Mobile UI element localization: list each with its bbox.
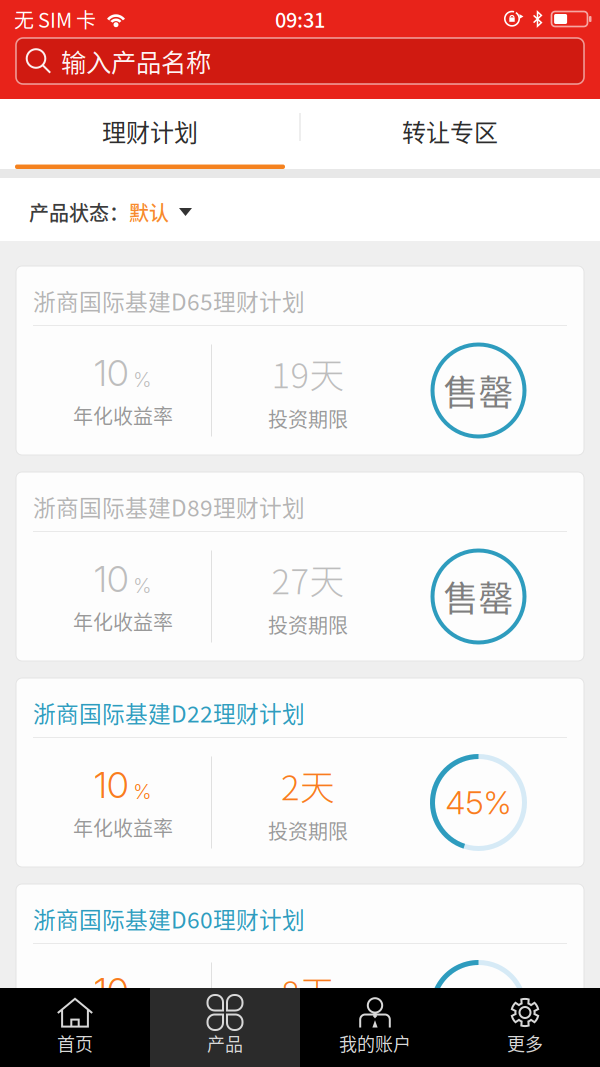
staticText: 10	[94, 969, 129, 1013]
staticText: 27天	[271, 554, 344, 604]
staticText: 10	[94, 351, 129, 395]
staticText: 19天	[271, 348, 344, 398]
staticText: 售罄	[443, 365, 513, 416]
staticText: 首页	[57, 1030, 93, 1056]
button[interactable]: 产品	[150, 988, 300, 1067]
button[interactable]: 浙商国际基建D60理财计划	[16, 884, 584, 1067]
staticText: 45%	[445, 783, 511, 822]
staticText: 产品	[207, 1030, 243, 1056]
staticText: 年化收益率	[73, 1019, 173, 1048]
staticText: 输入产品名称	[61, 43, 211, 79]
button[interactable]: 浙商国际基建D65理财计划	[16, 266, 584, 455]
staticText: 2天	[281, 760, 335, 810]
staticText: 我的账户	[339, 1030, 411, 1056]
staticText: 浙商国际基建D60理财计划	[33, 902, 305, 935]
button[interactable]: 我的账户	[300, 988, 450, 1067]
button[interactable]: 浙商国际基建D22理财计划	[16, 678, 584, 867]
staticText: 投资期限	[268, 1022, 348, 1051]
staticText: 更多	[507, 1030, 543, 1056]
staticText: 投资期限	[268, 610, 348, 639]
staticText: 售罄	[443, 571, 513, 622]
staticText: 8天	[281, 966, 335, 1016]
staticText: 无 SIM 卡	[14, 4, 96, 33]
staticText: 09:31	[275, 4, 325, 33]
staticText: 年化收益率	[73, 401, 173, 430]
staticText: %	[133, 368, 152, 392]
staticText: 浙商国际基建D65理财计划	[33, 284, 305, 317]
staticText: 理财计划	[102, 114, 198, 148]
staticText: %	[133, 986, 152, 1010]
staticText: 30%	[445, 989, 511, 1028]
staticText: 默认	[129, 197, 169, 226]
staticText: 10	[94, 557, 129, 601]
staticText: %	[133, 574, 152, 598]
staticText: 转让专区	[402, 114, 498, 148]
staticText: 年化收益率	[73, 813, 173, 842]
staticText: 投资期限	[268, 404, 348, 433]
staticText: 年化收益率	[73, 607, 173, 636]
button[interactable]: 转让专区	[300, 99, 600, 169]
staticText: 浙商国际基建D89理财计划	[33, 490, 305, 523]
button[interactable]: 理财计划	[0, 99, 300, 169]
button[interactable]: 浙商国际基建D89理财计划	[16, 472, 584, 661]
button[interactable]: 产品状态：	[0, 178, 600, 241]
staticText: 投资期限	[268, 816, 348, 845]
button[interactable]: 输入产品名称	[16, 38, 584, 84]
button[interactable]: 更多	[450, 988, 600, 1067]
button[interactable]: 首页	[0, 988, 150, 1067]
staticText: %	[133, 780, 152, 804]
staticText: 10	[94, 763, 129, 807]
staticText: 产品状态：	[29, 197, 129, 226]
staticText: 浙商国际基建D22理财计划	[33, 696, 305, 729]
